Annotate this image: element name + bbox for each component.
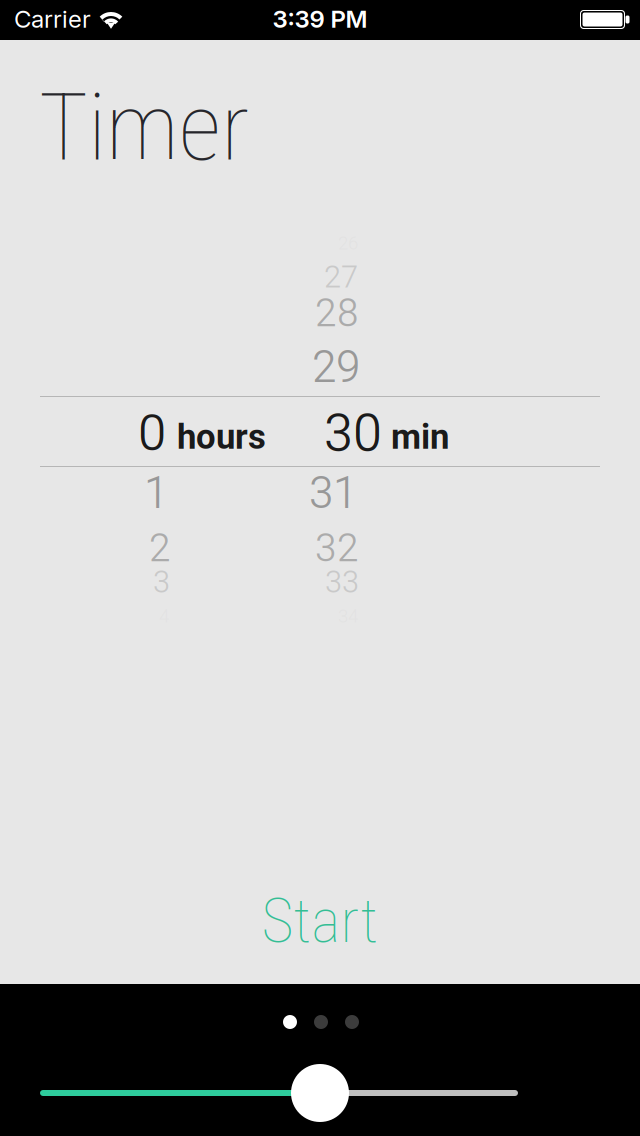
staticText: min: [391, 417, 449, 457]
staticText: 28: [315, 290, 359, 336]
staticText: 1: [144, 467, 168, 519]
staticText: 0: [138, 403, 166, 463]
staticText: 3:39 PM: [272, 4, 367, 33]
staticText: 31: [309, 467, 357, 519]
staticText: 2: [149, 525, 171, 571]
button[interactable]: Start: [0, 866, 640, 976]
staticText: 30: [324, 402, 382, 463]
staticText: 32: [315, 525, 359, 571]
staticText: 27: [324, 259, 358, 295]
staticText: hours: [177, 417, 266, 457]
staticText: 29: [312, 341, 360, 393]
button[interactable]: Volume: [0, 1054, 640, 1134]
staticText: 33: [325, 564, 359, 600]
staticText: Carrier: [14, 4, 91, 33]
button[interactable]: Hours, 0: [40, 226, 240, 646]
staticText: Start: [261, 885, 378, 957]
staticText: Timer: [39, 73, 249, 182]
button[interactable]: Minutes, 30: [240, 226, 440, 646]
staticText: 3: [153, 564, 170, 600]
